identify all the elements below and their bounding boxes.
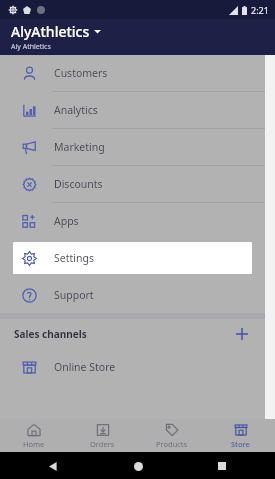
- button[interactable]: Discounts: [0, 166, 265, 202]
- staticText: AlyAthletics: [11, 22, 90, 41]
- button[interactable]: Customers: [0, 55, 265, 91]
- staticText: Marketing: [54, 140, 105, 154]
- button[interactable]: Add sales channel: [231, 323, 253, 345]
- button[interactable]: Settings: [13, 242, 252, 274]
- staticText: Aly Athletics: [11, 42, 51, 52]
- staticText: Online Store: [54, 360, 116, 374]
- staticText: Settings: [54, 251, 94, 265]
- staticText: Sales channels: [14, 327, 87, 341]
- staticText: Customers: [54, 66, 108, 80]
- button[interactable]: Products: [137, 419, 206, 452]
- staticText: 2:21: [251, 4, 269, 16]
- button[interactable]: Home: [129, 457, 147, 475]
- button[interactable]: Marketing: [0, 129, 265, 165]
- button[interactable]: Support: [0, 277, 265, 313]
- staticText: Support: [54, 288, 94, 302]
- staticText: Store: [231, 439, 250, 449]
- button[interactable]: Store: [206, 419, 275, 452]
- button[interactable]: Analytics: [0, 92, 265, 128]
- button[interactable]: Online Store: [0, 349, 265, 385]
- button[interactable]: Orders: [68, 419, 137, 452]
- staticText: Analytics: [54, 103, 98, 117]
- button[interactable]: Recents: [213, 457, 231, 475]
- staticText: Orders: [90, 439, 115, 449]
- staticText: Discounts: [54, 177, 103, 191]
- staticText: Products: [156, 439, 188, 449]
- staticText: Home: [23, 439, 45, 449]
- staticText: Apps: [54, 214, 79, 228]
- button[interactable]: Back: [44, 457, 62, 475]
- button[interactable]: Home: [0, 419, 68, 452]
- button[interactable]: Apps: [0, 203, 265, 239]
